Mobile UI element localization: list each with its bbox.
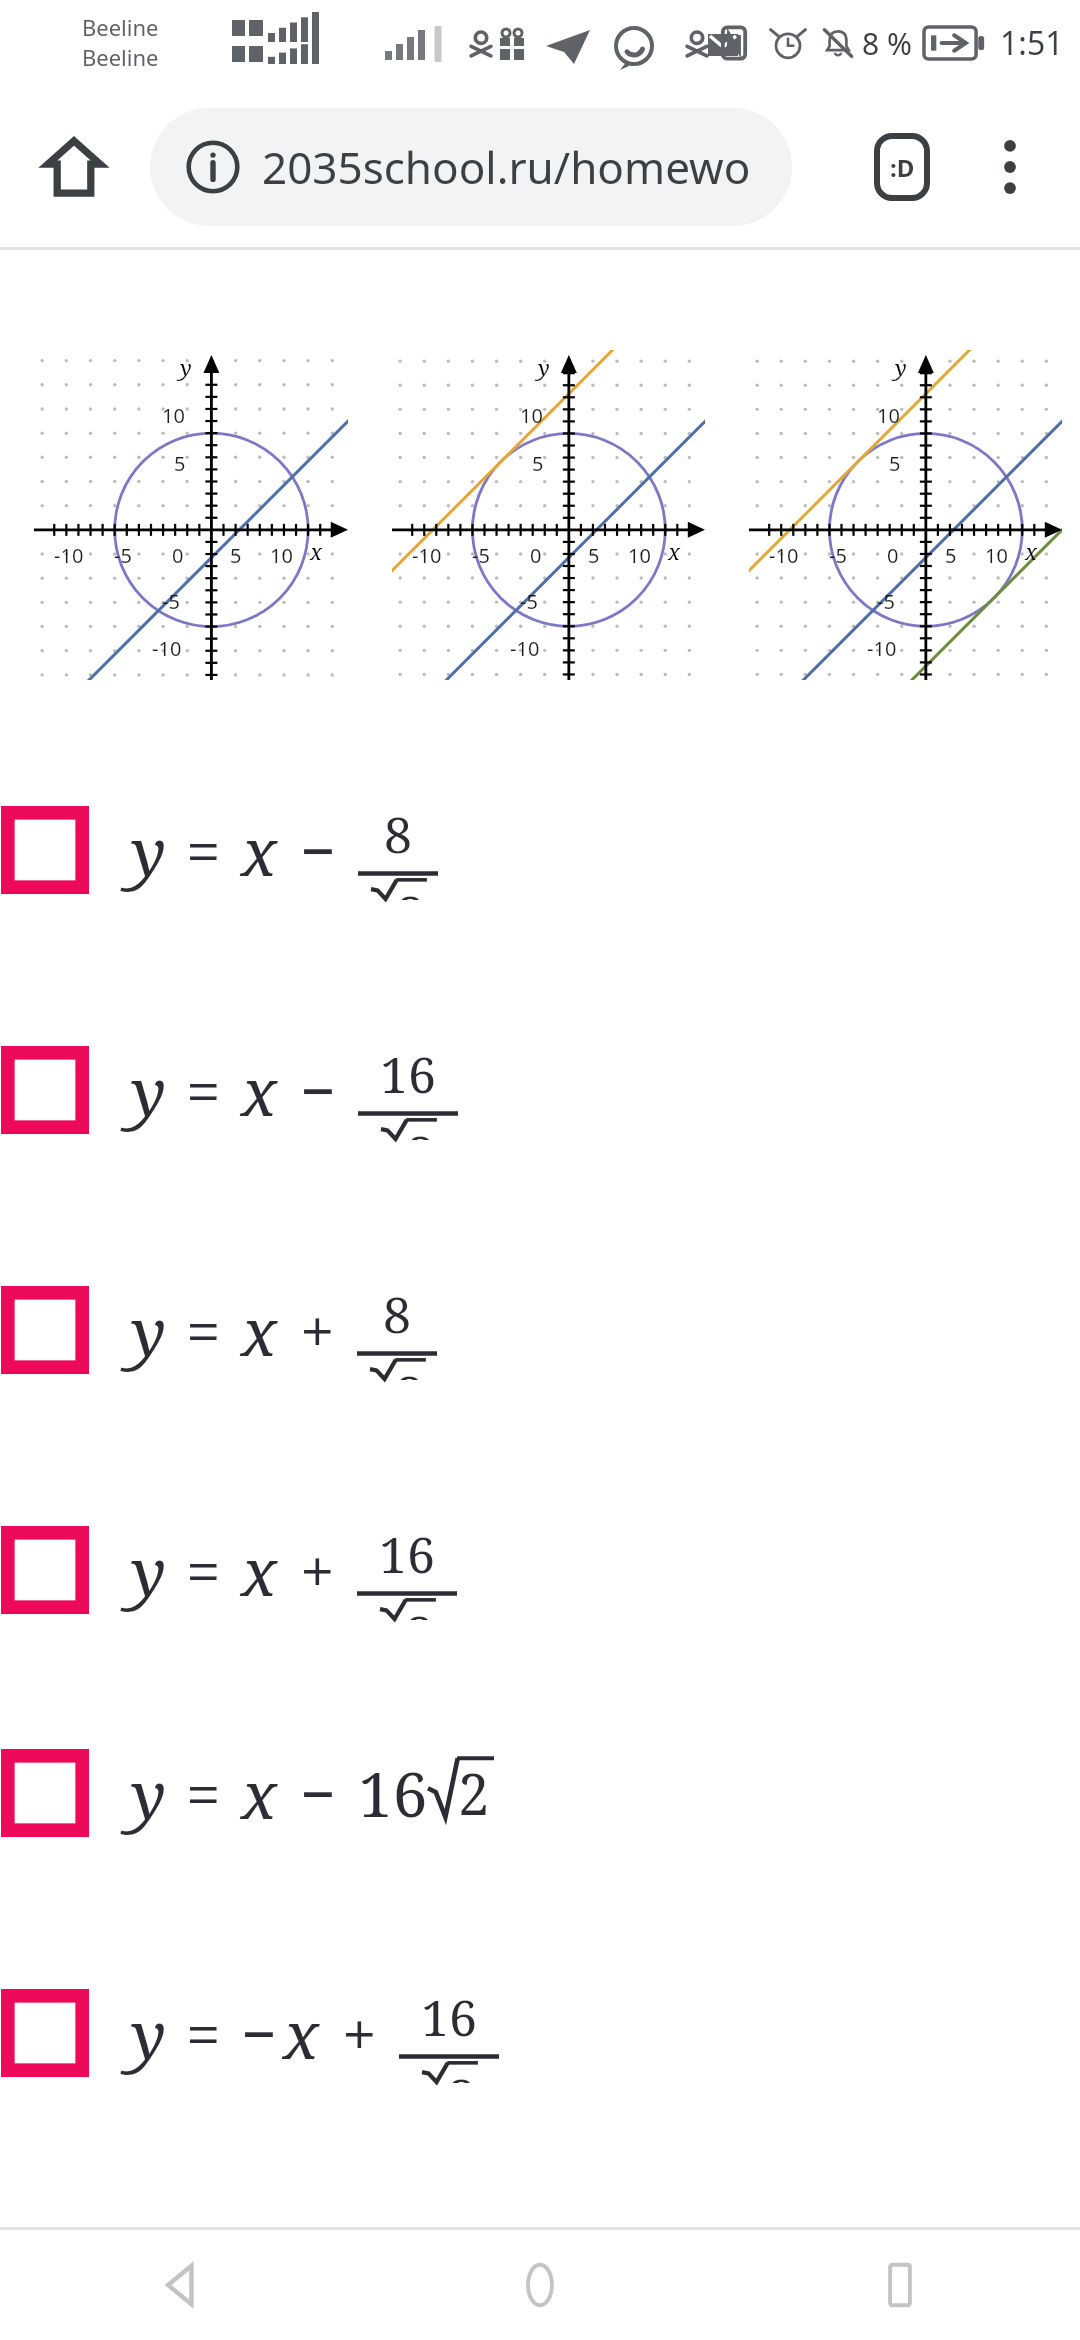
button[interactable]: Home: [360, 2230, 720, 2340]
staticText: 5: [230, 542, 242, 569]
staticText: Beeline: [82, 12, 159, 42]
staticText: =: [186, 808, 221, 892]
staticText: 16: [380, 1040, 436, 1108]
staticText: x: [241, 1285, 278, 1375]
staticText: 5: [945, 542, 957, 569]
button[interactable]: 2035school.ru/homewo: [150, 108, 792, 226]
staticText: -10: [867, 635, 897, 662]
staticText: y: [131, 805, 166, 895]
staticText: 2: [458, 1755, 490, 1831]
staticText: +: [342, 1991, 377, 2075]
staticText: y: [131, 1045, 166, 1135]
other: Silent: [818, 23, 858, 63]
staticText: 2: [396, 1359, 424, 1380]
staticText: y: [131, 1988, 166, 2078]
staticText: 10: [877, 402, 900, 429]
staticText: −: [300, 1751, 336, 1835]
staticText: y: [895, 352, 907, 382]
staticText: =: [186, 1991, 221, 2075]
button[interactable]: Back: [0, 2230, 360, 2340]
staticText: 5: [889, 450, 901, 477]
staticText: 10: [628, 542, 651, 569]
staticText: =: [186, 1751, 221, 1835]
staticText: 5: [588, 542, 600, 569]
staticText: -5: [877, 588, 895, 615]
staticText: x: [310, 536, 323, 566]
staticText: x: [283, 1988, 320, 2078]
staticText: -5: [162, 588, 180, 615]
staticText: -5: [472, 542, 490, 569]
staticText: -10: [412, 542, 442, 569]
staticText: =: [186, 1048, 221, 1132]
staticText: -10: [54, 542, 84, 569]
staticText: 16: [379, 1520, 435, 1588]
staticText: +: [300, 1288, 335, 1372]
button[interactable]: More options: [964, 121, 1056, 213]
staticText: 10: [520, 402, 543, 429]
staticText: :D: [890, 151, 915, 184]
staticText: x: [241, 1748, 278, 1838]
staticText: 5: [174, 450, 186, 477]
staticText: 2: [407, 1119, 435, 1140]
staticText: 2: [397, 879, 425, 900]
staticText: −: [300, 808, 336, 892]
staticText: +: [300, 1528, 335, 1612]
staticText: y: [538, 352, 550, 382]
staticText: 8: [383, 1280, 411, 1348]
staticText: x: [241, 1525, 278, 1615]
staticText: −: [241, 1991, 277, 2075]
staticText: 1:51: [1000, 21, 1064, 65]
staticText: 0: [887, 542, 899, 569]
button[interactable]: y: [0, 1520, 1080, 1620]
staticText: y: [131, 1525, 166, 1615]
staticText: x: [241, 1045, 278, 1135]
staticText: 2035school.ru/homewo: [262, 137, 751, 197]
staticText: y: [131, 1748, 166, 1838]
button[interactable]: Reader mode: [856, 121, 948, 213]
staticText: 16: [358, 1751, 428, 1835]
staticText: 10: [985, 542, 1008, 569]
staticText: x: [241, 805, 278, 895]
staticText: -10: [769, 542, 799, 569]
staticText: y: [180, 352, 192, 382]
button[interactable]: Recents: [720, 2230, 1080, 2340]
staticText: 10: [270, 542, 293, 569]
staticText: -5: [829, 542, 847, 569]
staticText: -5: [520, 588, 538, 615]
staticText: 8: [384, 800, 412, 868]
staticText: −: [300, 1048, 336, 1132]
button[interactable]: y: [0, 800, 1080, 900]
staticText: 2: [448, 2062, 476, 2083]
button[interactable]: y: [0, 1983, 1080, 2083]
button[interactable]: y: [0, 1743, 1080, 1843]
button[interactable]: y: [0, 1280, 1080, 1380]
staticText: x: [668, 536, 681, 566]
staticText: 0: [530, 542, 542, 569]
staticText: -10: [510, 635, 540, 662]
staticText: Beeline: [82, 42, 159, 72]
staticText: =: [186, 1288, 221, 1372]
button[interactable]: y: [0, 1040, 1080, 1140]
staticText: 0: [172, 542, 184, 569]
button[interactable]: Home: [28, 121, 120, 213]
staticText: =: [186, 1528, 221, 1612]
staticText: x: [1025, 536, 1038, 566]
staticText: 16: [421, 1983, 477, 2051]
staticText: 5: [532, 450, 544, 477]
staticText: y: [131, 1285, 166, 1375]
staticText: 10: [162, 402, 185, 429]
other: NFC: [714, 23, 754, 63]
other: Alarm: [768, 23, 808, 63]
staticText: -10: [152, 635, 182, 662]
staticText: 2: [406, 1599, 434, 1620]
staticText: -5: [114, 542, 132, 569]
staticText: 8 %: [862, 23, 912, 64]
